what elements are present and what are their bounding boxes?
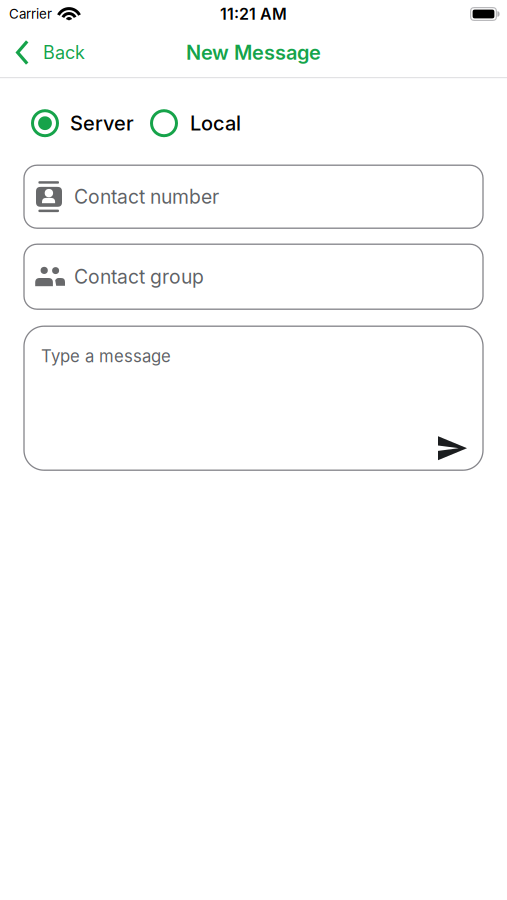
button[interactable]: Contact number — [24, 165, 483, 228]
staticText: Back — [43, 42, 85, 63]
button[interactable]: Send — [438, 436, 467, 460]
button[interactable]: Back — [16, 40, 85, 65]
staticText: Server — [70, 111, 134, 135]
button[interactable]: Server — [31, 109, 134, 137]
staticText: Contact group — [74, 265, 204, 288]
staticText: Local — [190, 111, 241, 135]
staticText: New Message — [186, 40, 321, 65]
staticText: Type a message — [41, 346, 171, 366]
staticText: 11:21 AM — [220, 4, 287, 24]
button[interactable]: Local — [150, 109, 241, 137]
staticText: Carrier — [9, 6, 52, 22]
button[interactable]: Contact group — [24, 244, 483, 309]
staticText: Contact number — [74, 185, 219, 208]
